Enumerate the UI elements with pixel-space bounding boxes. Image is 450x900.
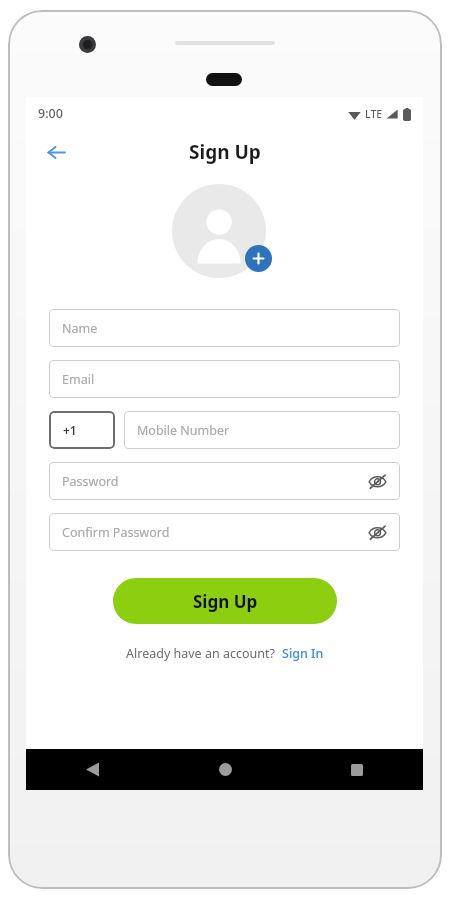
- staticText: +1: [63, 422, 77, 438]
- staticText: Sign Up: [193, 590, 258, 613]
- button[interactable]: Password: [49, 462, 400, 500]
- staticText: Mobile Number: [137, 422, 230, 439]
- staticText: Password: [62, 473, 119, 490]
- staticText: Confirm Password: [62, 524, 170, 541]
- button[interactable]: Sign In: [282, 645, 324, 662]
- button[interactable]: Confirm Password: [49, 513, 400, 551]
- button[interactable]: Show password: [364, 468, 390, 494]
- staticText: Email: [62, 371, 95, 388]
- staticText: Name: [62, 320, 98, 337]
- staticText: LTE: [365, 107, 383, 121]
- button[interactable]: Mobile Number: [124, 411, 400, 449]
- staticText: 9:00: [38, 105, 63, 122]
- button[interactable]: Home: [159, 749, 291, 790]
- staticText: Sign In: [282, 645, 324, 662]
- button[interactable]: Recent apps: [291, 749, 423, 790]
- button[interactable]: Back: [26, 749, 159, 790]
- button[interactable]: +1: [49, 411, 115, 449]
- staticText: Already have an account?: [126, 645, 275, 662]
- button[interactable]: Name: [49, 309, 400, 347]
- staticText: Sign Up: [189, 139, 261, 165]
- button[interactable]: Add profile photo: [170, 184, 280, 280]
- button[interactable]: Show password: [364, 519, 390, 545]
- button[interactable]: Sign Up: [113, 578, 337, 624]
- button[interactable]: Back: [38, 135, 72, 169]
- button[interactable]: Email: [49, 360, 400, 398]
